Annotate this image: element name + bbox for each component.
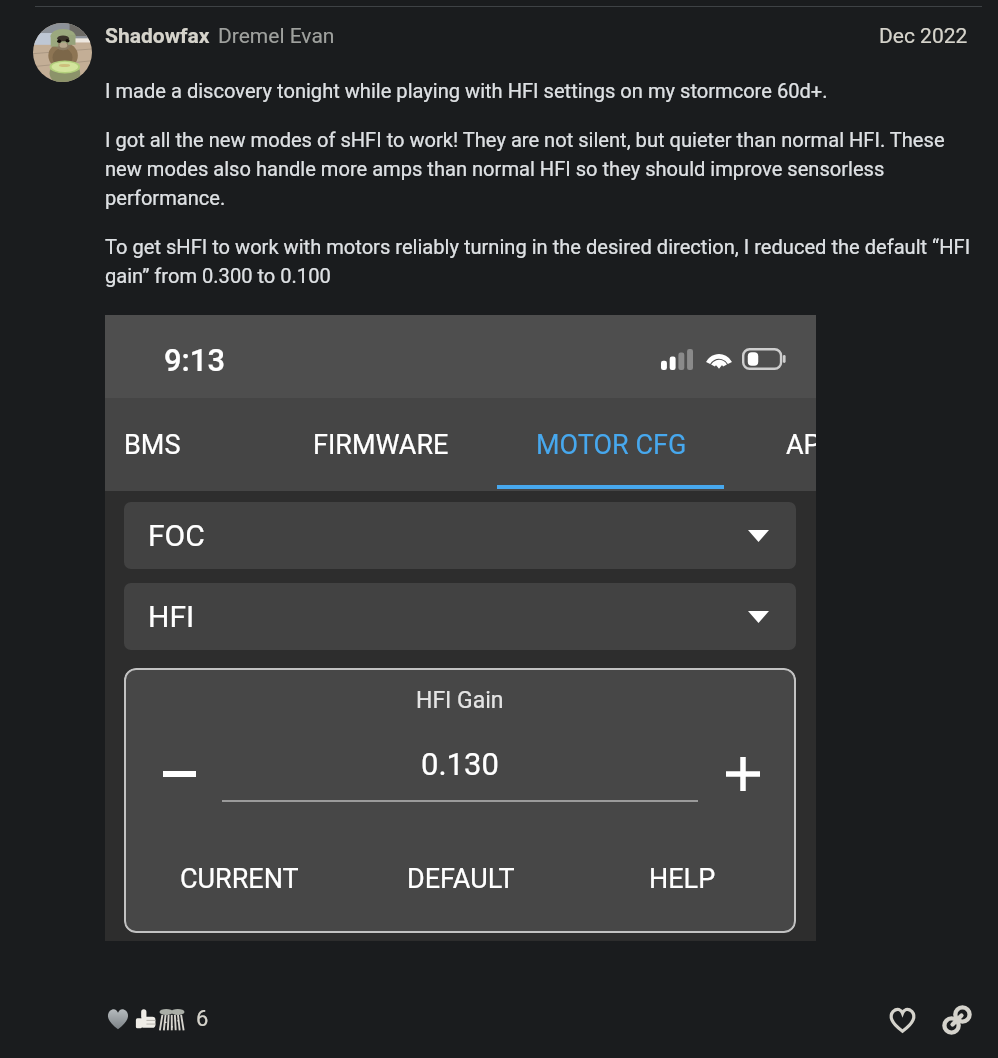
staticText: FOC	[148, 518, 205, 553]
button[interactable]: 6 reactions	[102, 1000, 213, 1038]
staticText: To get sHFI to work with motors reliably…	[105, 235, 979, 288]
button[interactable]: DEFAULT	[381, 853, 541, 905]
button[interactable]: Increase HFI gain	[707, 746, 779, 802]
button[interactable]: Decrease HFI gain	[143, 746, 215, 802]
staticText: 9:13	[164, 342, 226, 378]
staticText: FIRMWARE	[313, 429, 449, 461]
staticText: APP CFG	[786, 429, 816, 461]
staticText: I made a discovery tonight while playing…	[105, 79, 828, 103]
staticText: 0.130	[421, 746, 499, 782]
button[interactable]: HFI	[124, 583, 796, 650]
button[interactable]: CURRENT	[159, 853, 319, 905]
staticText: Dremel Evan	[218, 24, 335, 49]
button[interactable]: BMS	[105, 398, 266, 491]
button[interactable]: Shadowfax profile picture	[33, 23, 92, 82]
staticText: DEFAULT	[407, 863, 515, 895]
staticText: Dec 2022	[879, 24, 968, 49]
button[interactable]: FIRMWARE	[267, 398, 495, 491]
staticText: HELP	[649, 863, 716, 895]
button[interactable]: Copy link to post	[936, 999, 978, 1041]
staticText: HFI Gain	[416, 687, 504, 714]
staticText: MOTOR CFG	[536, 429, 687, 461]
staticText: BMS	[124, 429, 181, 461]
staticText: 6	[196, 1006, 209, 1032]
staticText: Shadowfax	[105, 24, 210, 49]
button[interactable]: FOC	[124, 502, 796, 569]
button[interactable]: APP CFG	[786, 398, 816, 491]
staticText: CURRENT	[180, 863, 299, 895]
staticText: HFI	[148, 599, 195, 634]
button[interactable]: HELP	[602, 853, 762, 905]
button[interactable]: MOTOR CFG	[497, 398, 725, 491]
button[interactable]: Like this post	[881, 999, 923, 1041]
staticText: I got all the new modes of sHFI to work!…	[105, 128, 979, 210]
